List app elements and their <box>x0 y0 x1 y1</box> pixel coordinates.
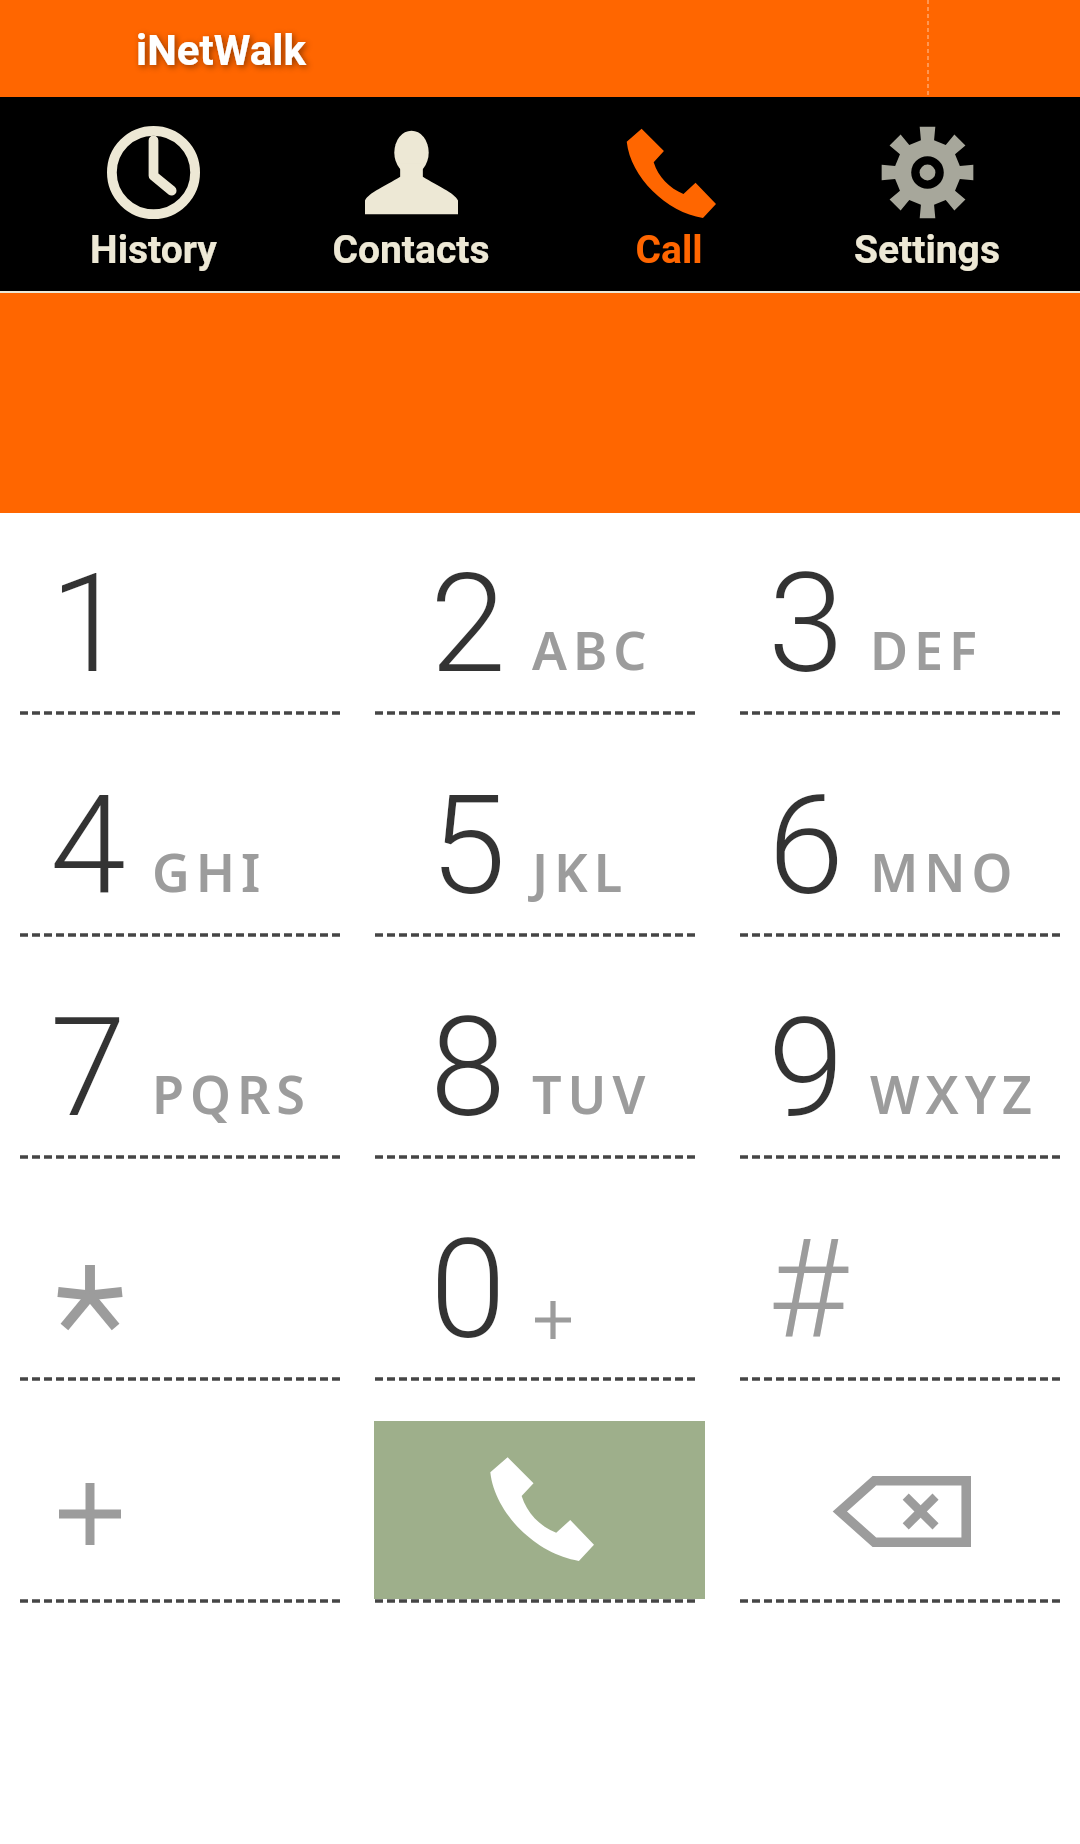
staticText: DEF <box>870 614 984 685</box>
button[interactable]: # <box>720 1179 1080 1401</box>
staticText: 1 <box>50 544 126 705</box>
staticText: 8 <box>430 988 506 1149</box>
staticText: PQRS <box>152 1058 311 1129</box>
staticText: History <box>90 227 217 273</box>
staticText: WXYZ <box>870 1058 1039 1129</box>
staticText: Settings <box>854 227 1000 273</box>
button[interactable]: Call <box>360 1401 720 1623</box>
button[interactable]: 0 <box>360 1179 720 1401</box>
button[interactable]: 1 <box>0 513 360 735</box>
staticText: 4 <box>50 766 126 927</box>
other: Backspace <box>833 1476 971 1547</box>
staticText: TUV <box>532 1058 652 1129</box>
button[interactable]: 3 <box>720 513 1080 735</box>
staticText: GHI <box>152 836 267 907</box>
button[interactable]: 8 <box>360 957 720 1179</box>
button[interactable]: 9 <box>720 957 1080 1179</box>
staticText: 7 <box>50 988 126 1149</box>
button[interactable]: 5 <box>360 735 720 957</box>
staticText: 3 <box>768 544 844 705</box>
button[interactable]: Backspace <box>720 1401 1080 1623</box>
staticText: # <box>768 1210 848 1371</box>
button[interactable]: 7 <box>0 957 360 1179</box>
staticText: iNetWalk <box>136 26 306 75</box>
button[interactable]: 2 <box>360 513 720 735</box>
staticText: Contacts <box>332 227 490 273</box>
staticText: 6 <box>768 766 844 927</box>
staticText: Call <box>635 227 703 273</box>
staticText: 5 <box>430 766 506 927</box>
button[interactable]: History <box>24 97 282 291</box>
other: Call <box>374 1421 705 1599</box>
button[interactable]: Call <box>540 97 798 291</box>
staticText: ABC <box>532 614 653 685</box>
button[interactable] <box>0 1179 360 1401</box>
button[interactable]: Settings <box>798 97 1056 291</box>
staticText: 0 <box>430 1210 506 1371</box>
staticText: MNO <box>870 836 1019 907</box>
staticText: 9 <box>768 988 844 1149</box>
button[interactable]: 6 <box>720 735 1080 957</box>
button[interactable] <box>0 1401 360 1623</box>
button[interactable]: 4 <box>0 735 360 957</box>
staticText: JKL <box>532 836 629 907</box>
staticText: 2 <box>430 544 506 705</box>
button[interactable]: Contacts <box>282 97 540 291</box>
